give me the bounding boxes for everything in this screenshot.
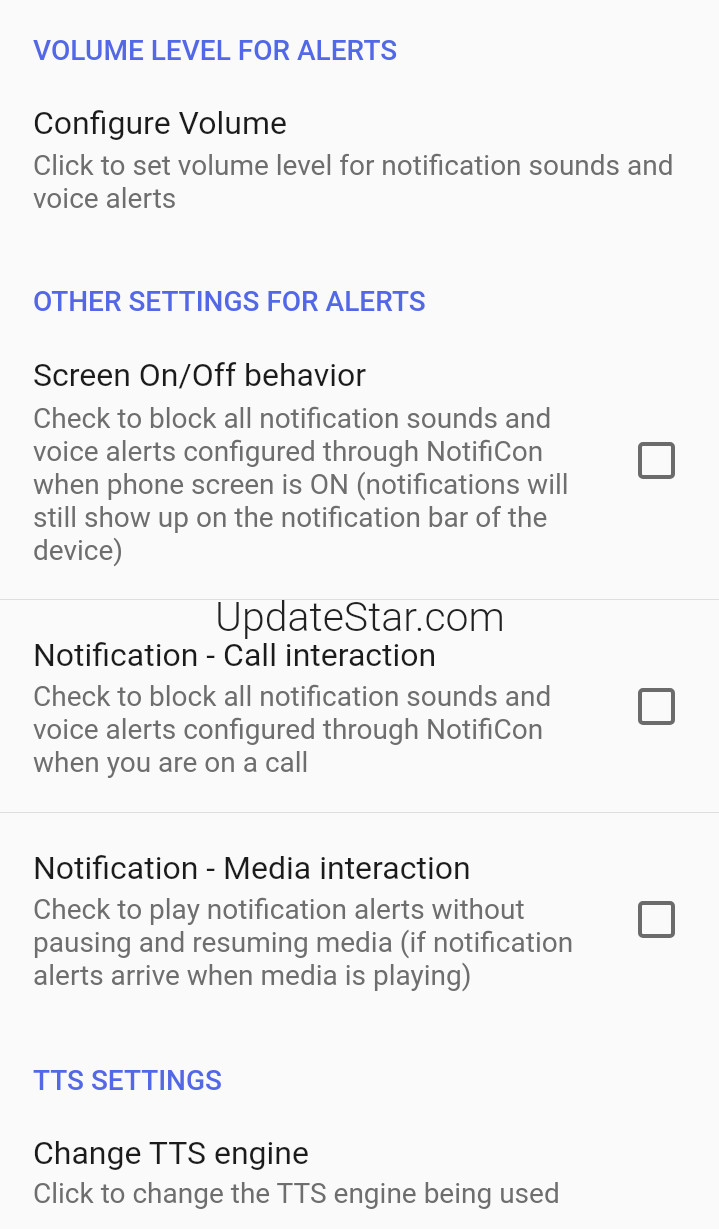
button[interactable]: Notification - Media interaction	[0, 813, 719, 1020]
staticText: Screen On/Off behavior	[33, 356, 605, 394]
button[interactable]: Toggle Notification - Call interaction	[638, 688, 675, 725]
staticText: Click to change the TTS engine being use…	[33, 1177, 688, 1210]
staticText: VOLUME LEVEL FOR ALERTS	[33, 34, 398, 67]
button[interactable]: Configure Volume	[0, 88, 719, 228]
button[interactable]: Toggle Screen On/Off behavior	[638, 442, 675, 479]
staticText: Check to play notification alerts withou…	[33, 893, 605, 992]
staticText: Notification - Call interaction	[33, 636, 605, 674]
staticText: Change TTS engine	[33, 1134, 688, 1172]
staticText: Notification - Media interaction	[33, 849, 605, 887]
button[interactable]: Toggle Notification - Media interaction	[638, 901, 675, 938]
staticText: UpdateStar.com	[215, 593, 505, 641]
button[interactable]: Change TTS engine	[0, 1115, 719, 1229]
staticText: TTS SETTINGS	[33, 1064, 222, 1097]
staticText: Configure Volume	[33, 104, 688, 142]
staticText: Check to block all notification sounds a…	[33, 402, 605, 567]
button[interactable]: Notification - Call interaction	[0, 600, 719, 812]
staticText: Click to set volume level for notificati…	[33, 149, 688, 215]
button[interactable]: Screen On/Off behavior	[0, 340, 719, 599]
staticText: Check to block all notification sounds a…	[33, 680, 605, 779]
staticText: OTHER SETTINGS FOR ALERTS	[33, 285, 426, 318]
